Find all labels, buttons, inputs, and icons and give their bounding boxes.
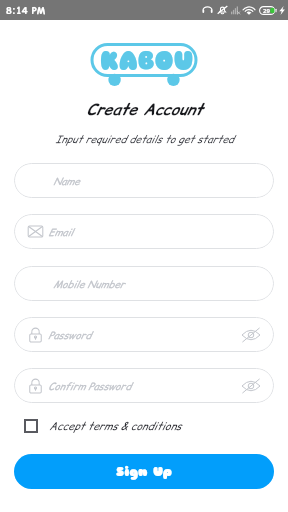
staticText: Name	[53, 174, 80, 188]
button[interactable]: Show password	[240, 375, 262, 397]
staticText: Email	[48, 225, 73, 239]
button[interactable]: Mobile Number	[14, 266, 274, 301]
staticText: Mobile Number	[53, 277, 125, 291]
button[interactable]: Sign Up	[14, 454, 274, 489]
staticText: Input required details to get started	[55, 132, 234, 146]
button[interactable]: Accept terms & conditions	[24, 416, 181, 436]
button[interactable]: Name	[14, 163, 274, 198]
staticText: Password	[48, 328, 91, 342]
staticText: Sign Up	[116, 464, 172, 480]
staticText: KABOU	[100, 46, 194, 78]
button[interactable]: Email	[14, 214, 274, 249]
staticText: Create Account	[86, 99, 202, 121]
staticText: 8:14 PM	[6, 4, 46, 17]
button[interactable]: Confirm Password	[14, 368, 274, 403]
staticText: Accept terms & conditions	[49, 419, 181, 434]
button[interactable]: Show password	[240, 324, 262, 346]
staticText: Confirm Password	[48, 379, 131, 393]
button[interactable]: Password	[14, 317, 274, 352]
staticText: 29	[263, 7, 270, 15]
